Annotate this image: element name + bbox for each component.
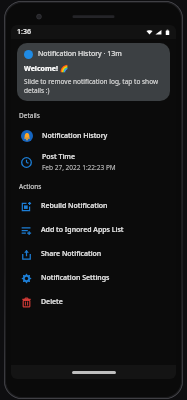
- other: Notification History app icon: [21, 130, 33, 142]
- other: Rebuild Notification: [21, 201, 32, 212]
- button[interactable]: Notification History · 13m: [17, 43, 170, 101]
- other: Post time: [21, 157, 32, 168]
- button[interactable]: Share Notification: [11, 242, 176, 266]
- staticText: Details: [19, 111, 40, 120]
- button[interactable]: Rebuild Notification: [11, 194, 176, 218]
- staticText: Notification History · 13m: [38, 49, 122, 59]
- other: Notification Settings: [21, 273, 32, 284]
- button[interactable]: Notification History app icon: [11, 124, 176, 147]
- staticText: Share Notification: [41, 249, 102, 259]
- button[interactable]: Delete: [11, 290, 176, 314]
- button[interactable]: Add to Ignored Apps List: [11, 218, 176, 242]
- staticText: Notification Settings: [41, 273, 110, 283]
- button[interactable]: Notification Settings: [11, 266, 176, 290]
- staticText: Feb 27, 2022 1:22:23 PM: [42, 163, 116, 172]
- staticText: Rebuild Notification: [41, 201, 108, 211]
- button[interactable]: Post time: [11, 147, 176, 177]
- staticText: Delete: [41, 297, 63, 307]
- staticText: Add to Ignored Apps List: [41, 225, 124, 235]
- other: Share Notification: [21, 249, 32, 260]
- staticText: Slide to remove notification log, tap to…: [24, 77, 163, 95]
- staticText: 1:36: [17, 27, 31, 37]
- other: Add to Ignored Apps List: [21, 225, 32, 236]
- staticText: Welcome! 🌈: [24, 64, 69, 74]
- staticText: Actions: [19, 182, 42, 191]
- staticText: Post Time: [42, 152, 75, 162]
- other: Delete: [21, 297, 32, 308]
- staticText: Notification History: [42, 131, 108, 141]
